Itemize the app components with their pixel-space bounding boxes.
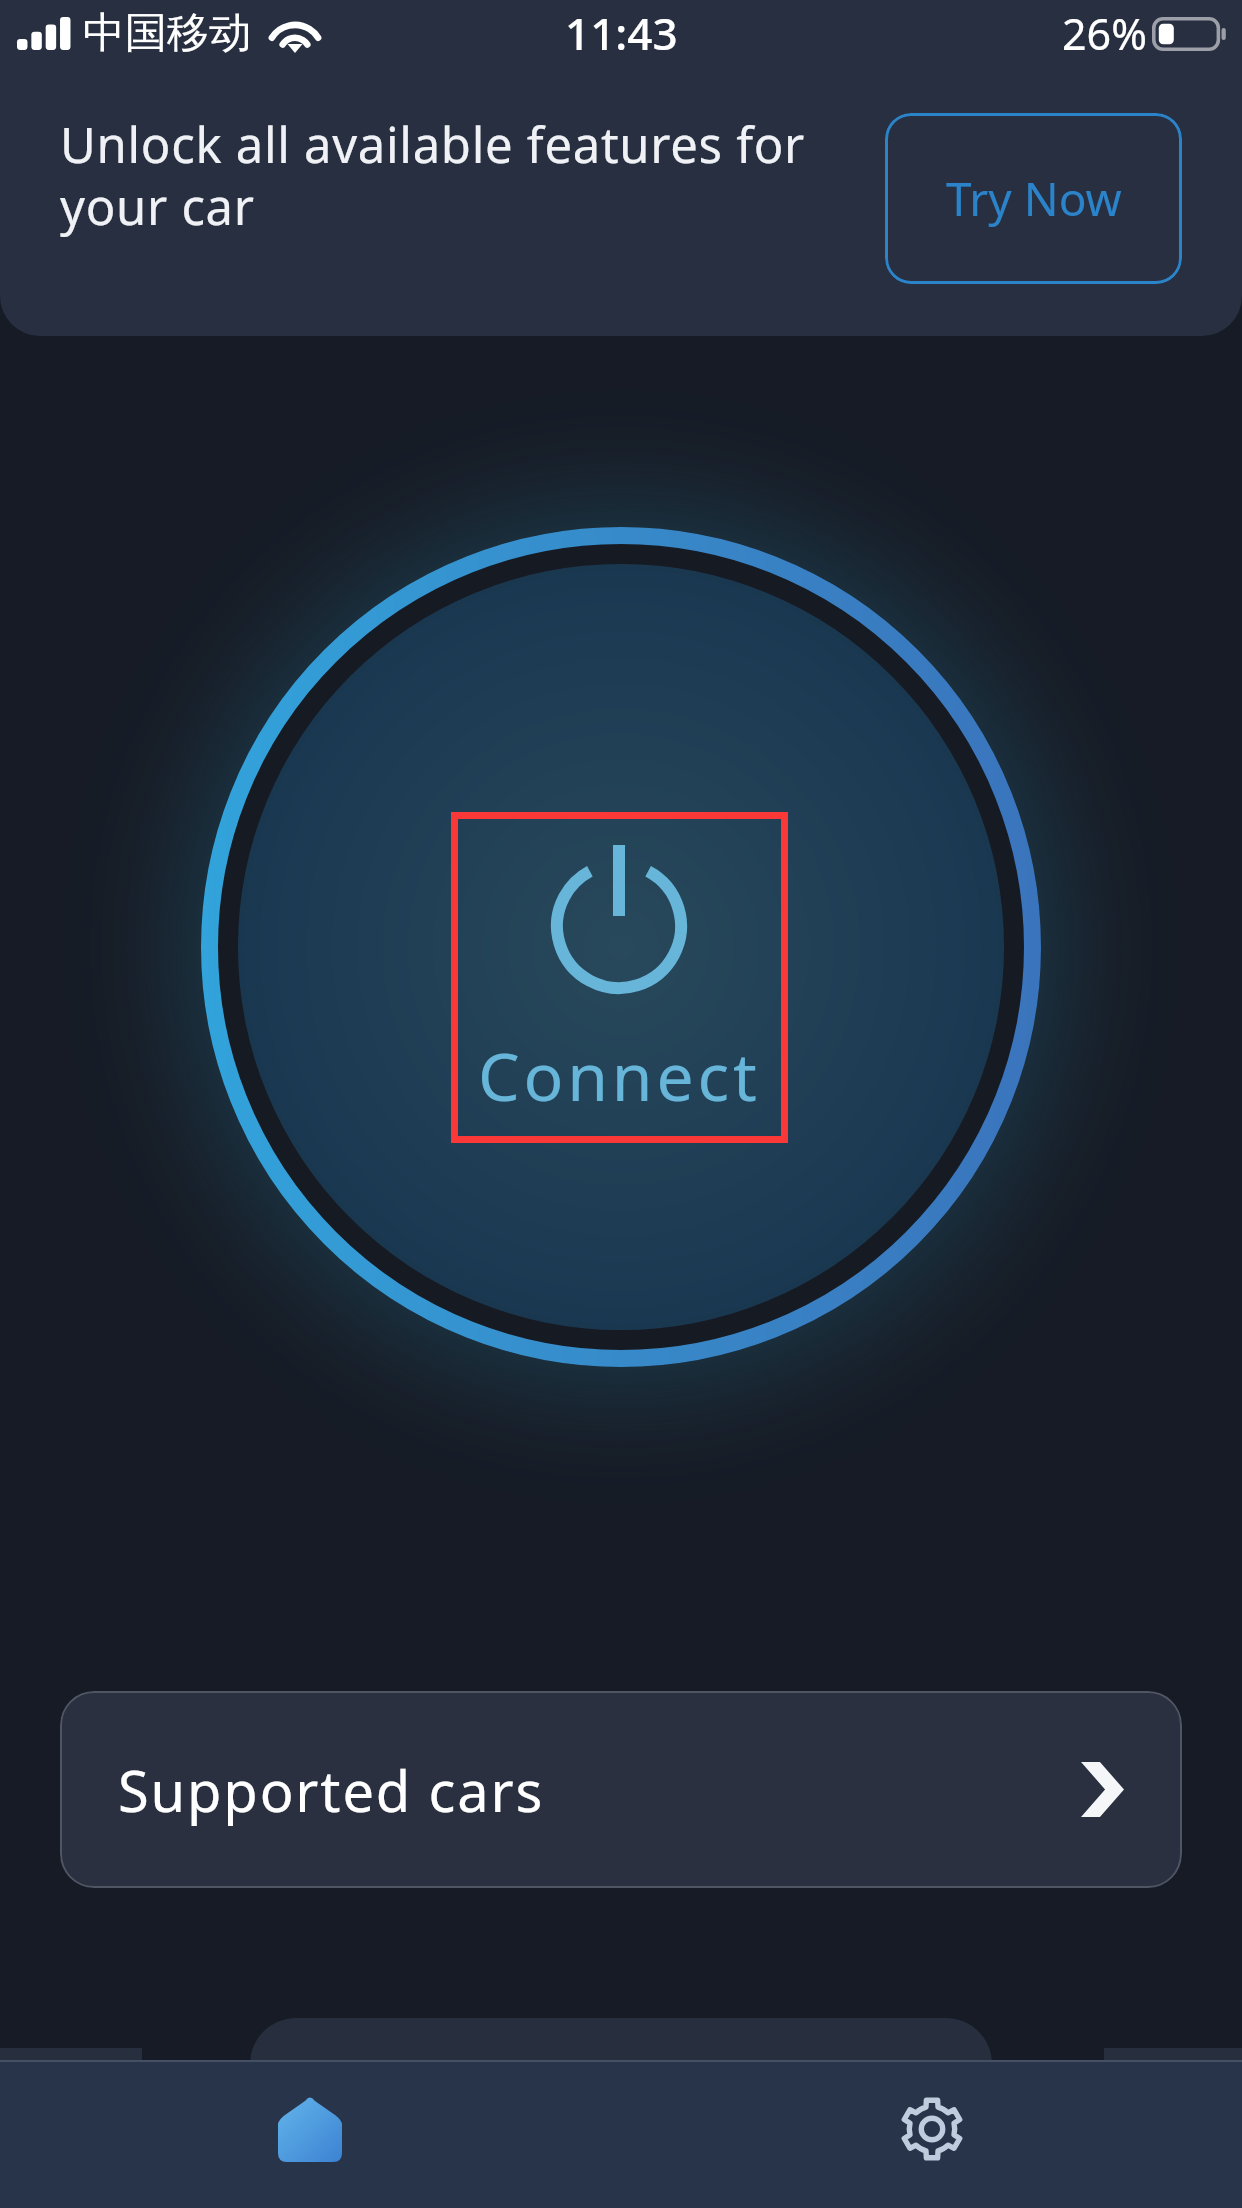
staticText: 中国移动 [83, 7, 251, 60]
staticText: 11:43 [565, 3, 678, 63]
button[interactable]: Supported cars [60, 1691, 1182, 1888]
staticText: Connect [478, 1030, 761, 1120]
button[interactable]: Home [0, 2060, 621, 2208]
staticText: 26% [1062, 4, 1147, 63]
button[interactable]: Connect [451, 812, 788, 1143]
staticText: Try Now [946, 167, 1122, 230]
staticText: Unlock all available features for your c… [60, 111, 806, 239]
staticText: Supported cars [118, 1752, 545, 1828]
button[interactable]: Settings [621, 2060, 1242, 2208]
button[interactable]: Try Now [885, 113, 1182, 284]
